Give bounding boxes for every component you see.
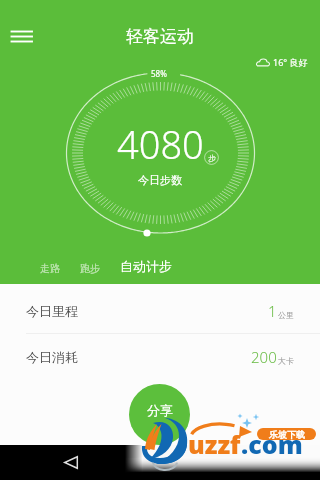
button[interactable]: 今日里程: [0, 288, 320, 333]
staticText: 16° 良好: [273, 56, 308, 68]
staticText: 公里: [278, 310, 294, 320]
staticText: 1: [268, 301, 277, 321]
staticText: 大卡: [278, 356, 294, 366]
button[interactable]: 16° 良好: [256, 56, 308, 68]
button[interactable]: 今日消耗: [0, 334, 320, 379]
staticText: uzzf: [188, 427, 241, 461]
staticText: 今日步数: [138, 173, 182, 187]
staticText: 今日消耗: [26, 349, 78, 365]
button[interactable]: 自动计步: [120, 258, 172, 274]
button[interactable]: 跑步: [80, 262, 100, 275]
button[interactable]: Home: [233, 445, 265, 480]
staticText: 今日里程: [26, 303, 78, 319]
button[interactable]: 分享: [129, 384, 190, 445]
staticText: 58%: [151, 68, 167, 79]
staticText: 步: [208, 153, 216, 163]
staticText: 分享: [147, 402, 173, 418]
button[interactable]: Menu: [2, 22, 42, 52]
staticText: 4080: [117, 118, 204, 170]
staticText: .com: [241, 427, 303, 461]
staticText: 轻客运动: [126, 26, 194, 47]
button[interactable]: Back: [55, 445, 87, 480]
button[interactable]: 走路: [40, 262, 60, 275]
staticText: 200: [251, 347, 277, 367]
staticText: 乐坡下载: [269, 429, 305, 440]
